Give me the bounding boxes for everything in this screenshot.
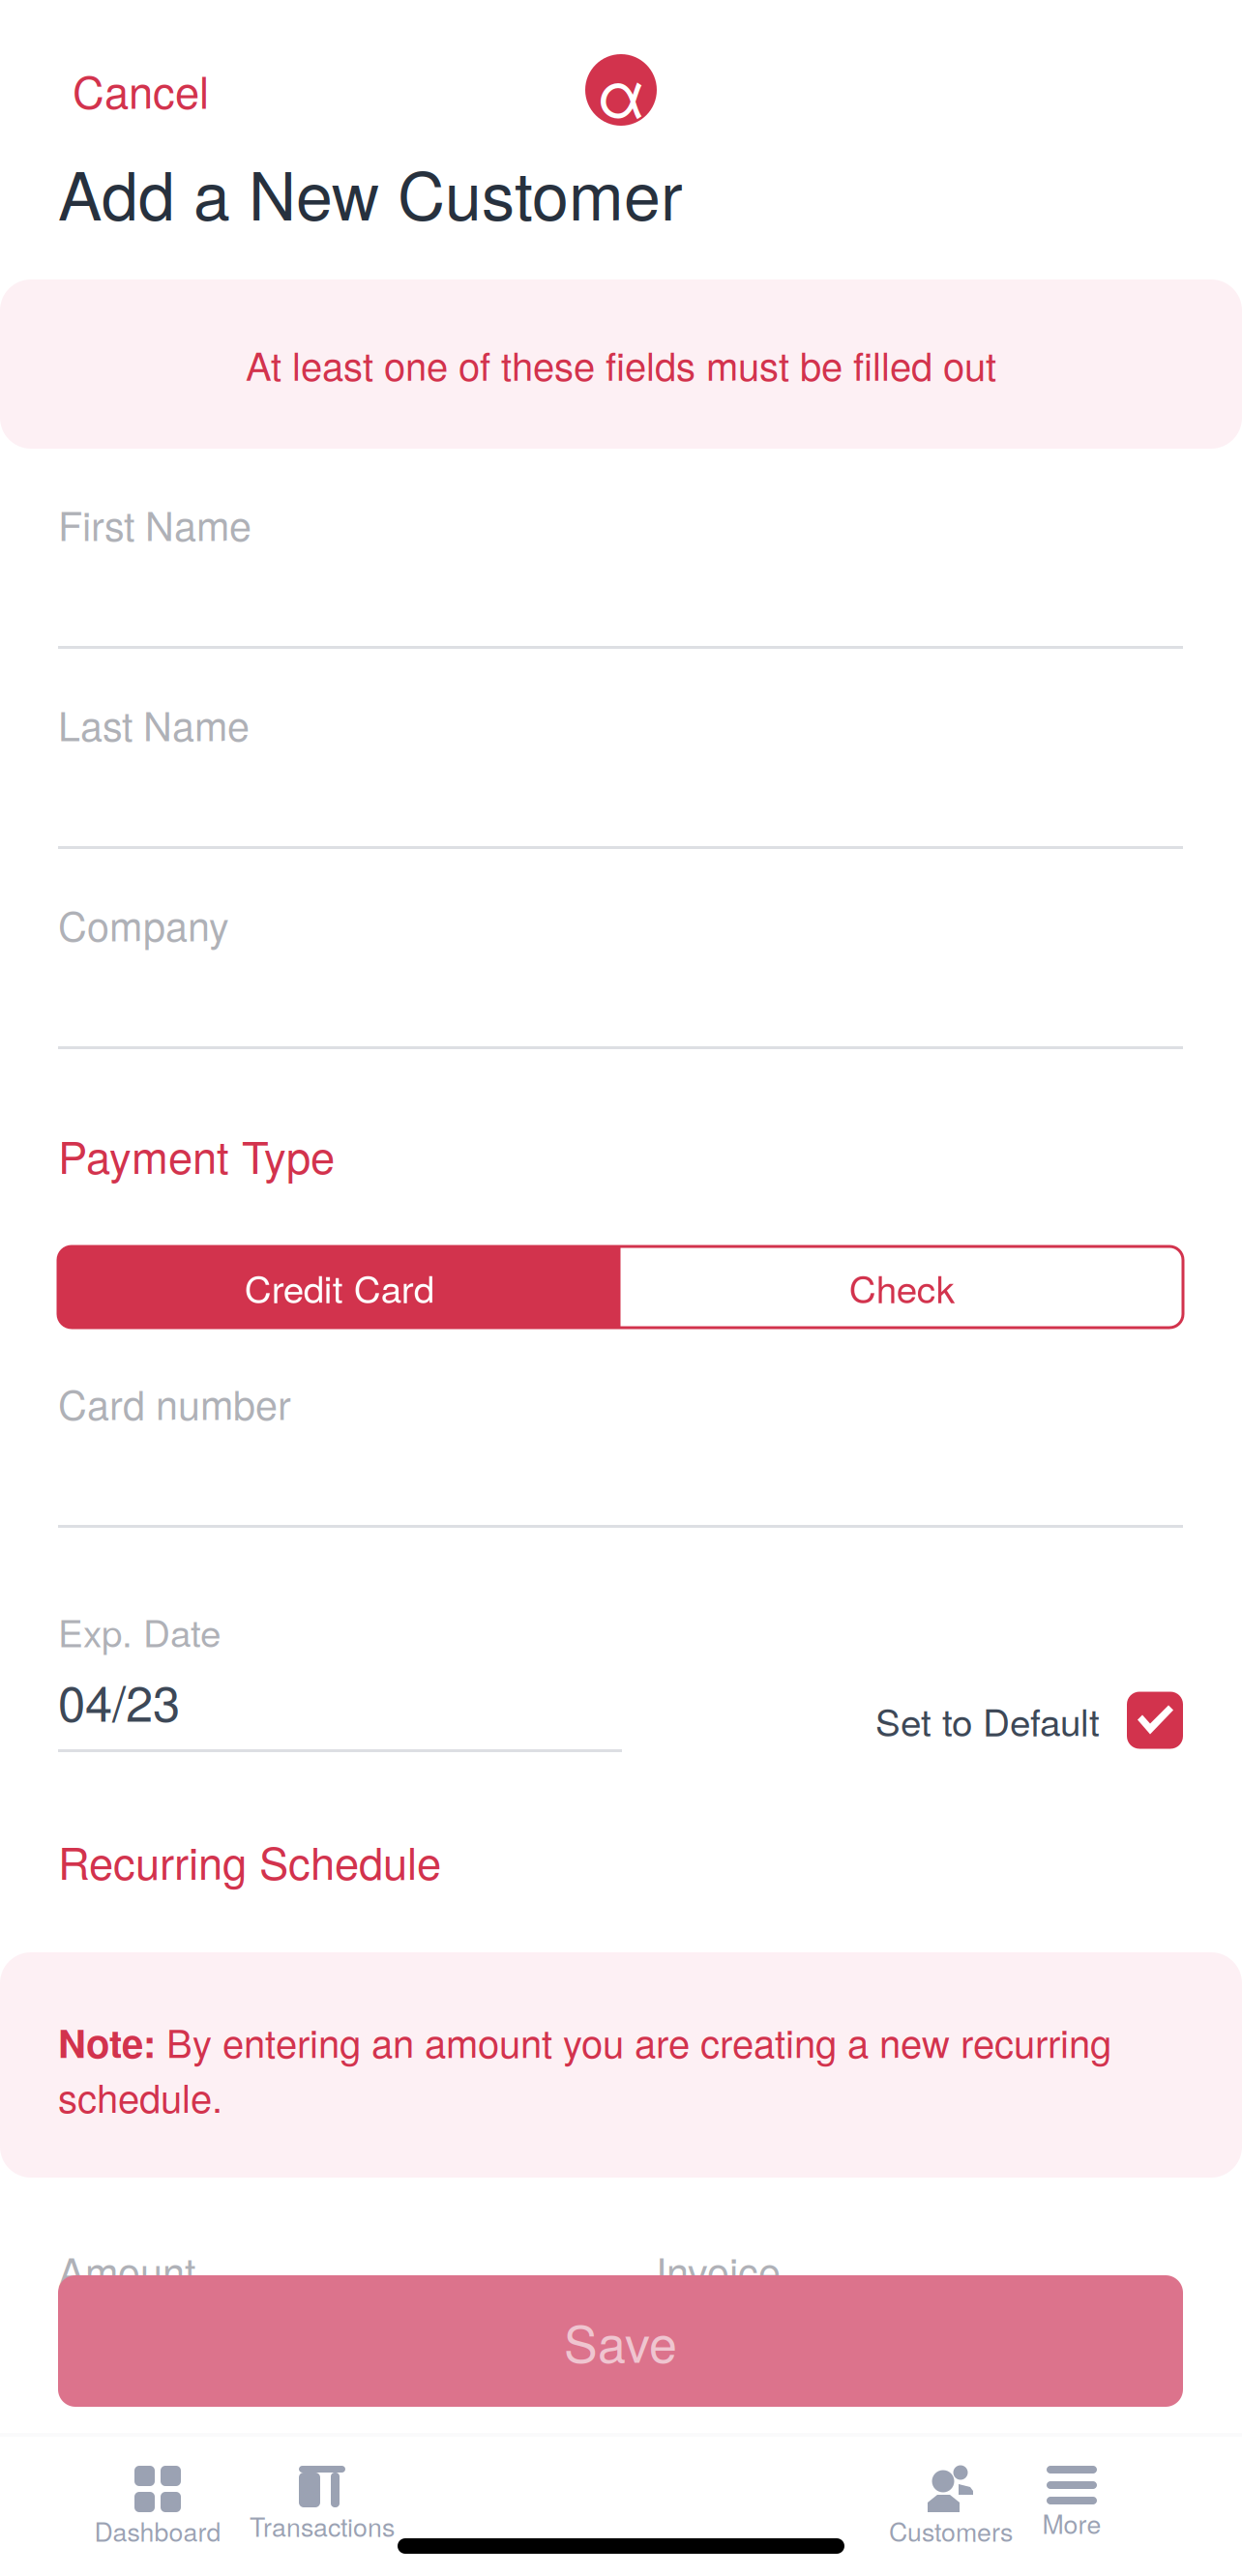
button[interactable]: Customers [871, 2437, 1031, 2576]
staticText: First Name [58, 495, 251, 552]
staticText: α [596, 44, 646, 136]
button[interactable]: Transactions [240, 2437, 404, 2576]
staticText: At least one of these fields must be fil… [246, 336, 996, 392]
staticText: Transactions [250, 2507, 395, 2544]
staticText: Amount [58, 2241, 195, 2299]
staticText: Invoice [656, 2241, 781, 2299]
staticText: Dashboard [94, 2512, 221, 2549]
staticText: Card number [58, 1374, 291, 1431]
button[interactable]: Set to Default [622, 1690, 1183, 1750]
staticText: Payment Type [58, 1124, 335, 1186]
staticText: Save [564, 2305, 677, 2377]
button[interactable]: Save [58, 2275, 1183, 2407]
staticText: Note: By entering an amount you are crea… [58, 2014, 1111, 2123]
button[interactable]: Cancel [0, 49, 238, 131]
staticText: Recurring Schedule [58, 1830, 441, 1892]
button[interactable]: More [1031, 2437, 1112, 2576]
staticText: Credit Card [245, 1260, 434, 1314]
staticText: Exp. Date [58, 1604, 221, 1658]
button[interactable]: Dashboard [75, 2437, 240, 2576]
staticText: Set to Default [875, 1693, 1100, 1747]
staticText: More [1042, 2504, 1101, 2541]
staticText: Cancel [73, 59, 209, 121]
staticText: Add a New Customer [58, 145, 683, 239]
staticText: Last Name [58, 695, 250, 752]
staticText: Customers [889, 2512, 1013, 2549]
staticText: 04/23 [58, 1666, 180, 1736]
button[interactable]: Check [621, 1246, 1183, 1328]
button[interactable]: Credit Card [58, 1246, 621, 1328]
staticText: Company [58, 895, 229, 953]
staticText: Check [849, 1260, 955, 1314]
